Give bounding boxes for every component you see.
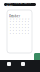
button[interactable]: Download on the App Store <box>7 62 11 66</box>
staticText: Never miss an event again <box>6 1 31 8</box>
staticText: October <box>9 14 20 18</box>
button[interactable]: Never miss an event again <box>4 3 36 6</box>
button[interactable]: Get it on Google Play <box>21 62 25 66</box>
